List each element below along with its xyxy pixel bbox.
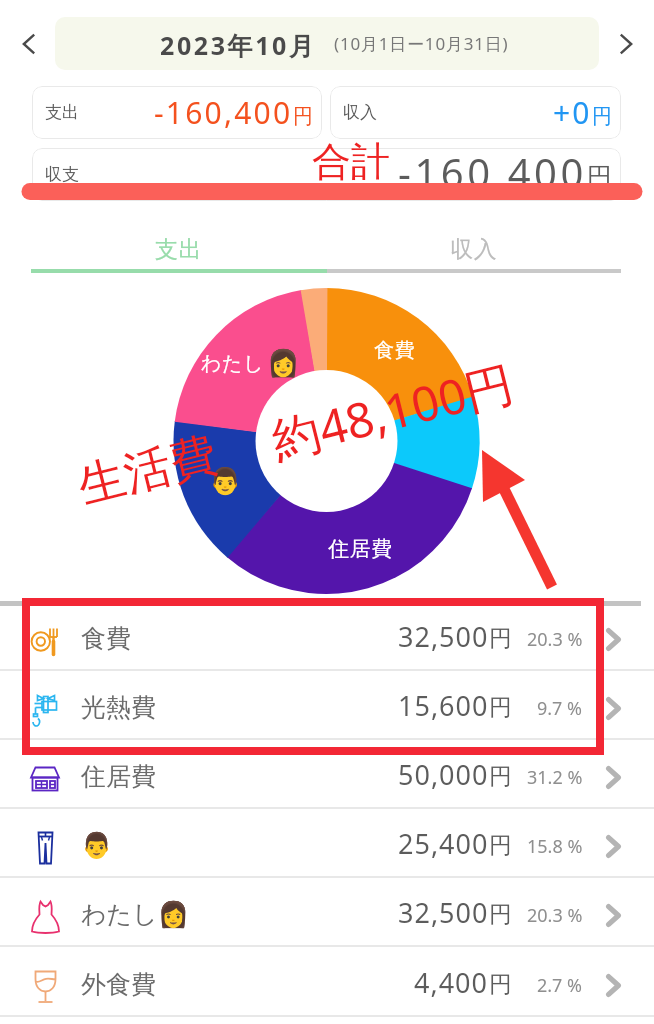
staticText: 約48,100円 <box>265 349 521 473</box>
button[interactable]: 支出 <box>32 86 322 139</box>
button[interactable]: 収支 <box>32 148 621 201</box>
staticText: 円 <box>592 104 612 129</box>
staticText: 支出 <box>155 235 203 264</box>
staticText: -160,400 <box>398 148 587 198</box>
button[interactable]: Next month <box>603 21 649 67</box>
staticText: 2023年10月 <box>160 28 317 62</box>
staticText: わたし👩 <box>81 899 189 930</box>
button[interactable]: 収入 <box>330 86 621 139</box>
staticText: 住居費 <box>81 761 156 792</box>
staticText: -160,400 <box>154 92 293 133</box>
button[interactable]: 食費 <box>0 602 654 671</box>
staticText: 食費 <box>374 338 415 363</box>
staticText: 👨 <box>81 831 113 860</box>
staticText: 収入 <box>343 102 377 123</box>
staticText: 支出 <box>45 102 79 123</box>
staticText: 円 <box>489 831 512 860</box>
staticText: 光熱費 <box>81 692 156 723</box>
staticText: 円 <box>489 762 512 791</box>
button[interactable]: 光熱費 <box>0 671 654 740</box>
staticText: 円 <box>293 104 313 129</box>
staticText: 4,400 <box>414 964 489 1001</box>
staticText: 31.2 % <box>527 765 583 790</box>
staticText: 25,400 <box>398 825 489 862</box>
staticText: +0 <box>553 92 592 133</box>
staticText: 15.8 % <box>527 834 583 859</box>
staticText: 👨 <box>209 466 242 496</box>
staticText: 住居費 <box>328 536 393 562</box>
button[interactable]: 2023年10月 <box>55 17 599 70</box>
staticText: 合計 <box>312 137 390 186</box>
button[interactable]: 支出 <box>31 228 327 273</box>
staticText: 👩 <box>267 348 300 378</box>
staticText: 20.3 % <box>527 903 583 928</box>
staticText: 9.7 % <box>537 696 583 721</box>
staticText: 15,600 <box>398 687 489 724</box>
staticText: わたし <box>201 351 264 376</box>
button[interactable]: 住居費 <box>0 740 654 809</box>
button[interactable]: 外食費 <box>0 948 654 1017</box>
staticText: 50,000 <box>398 756 489 793</box>
button[interactable]: 👨 <box>0 809 654 878</box>
staticText: 食費 <box>81 623 131 654</box>
button[interactable]: 収入 <box>327 228 621 273</box>
button[interactable]: わたし👩 <box>0 878 654 947</box>
staticText: 32,500 <box>398 618 489 655</box>
staticText: 生活費 <box>72 425 223 516</box>
staticText: 20.3 % <box>527 627 583 652</box>
staticText: 収入 <box>450 235 498 264</box>
staticText: 円 <box>489 624 512 653</box>
button[interactable]: Previous month <box>6 21 52 67</box>
staticText: 円 <box>587 161 612 192</box>
staticText: (10月1日ー10月31日) <box>334 32 509 55</box>
staticText: 円 <box>489 970 512 999</box>
staticText: 2.7 % <box>537 973 583 998</box>
staticText: 円 <box>489 693 512 722</box>
staticText: 円 <box>489 900 512 929</box>
staticText: 32,500 <box>398 894 489 931</box>
staticText: 外食費 <box>81 969 156 1000</box>
staticText: 収支 <box>45 164 79 185</box>
